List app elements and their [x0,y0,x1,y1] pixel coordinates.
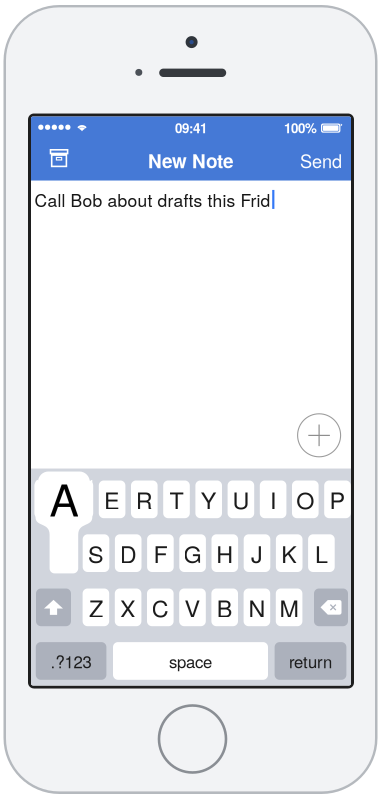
staticText: 100% [284,118,317,137]
button[interactable]: K [276,534,302,572]
staticText: A [49,466,78,529]
button[interactable]: G [179,534,206,572]
button[interactable]: E [99,480,125,518]
staticText: K [281,536,297,570]
button[interactable]: J [244,534,270,572]
button[interactable]: Compose [298,414,341,457]
button[interactable]: V [179,588,206,626]
button[interactable]: I [260,480,286,518]
button[interactable]: P [324,480,351,518]
staticText: U [232,483,249,516]
button[interactable]: F [147,534,174,572]
staticText: space [169,649,212,673]
staticText: F [153,536,167,570]
staticText: G [184,536,202,570]
button[interactable]: Y [195,480,222,518]
staticText: H [216,536,233,570]
staticText: I [270,483,276,516]
staticText: C [152,591,169,624]
button[interactable]: space [113,642,268,680]
button[interactable]: Q [34,480,61,518]
staticText: Send [300,147,342,173]
button[interactable]: Home [159,705,226,772]
staticText: S [88,536,104,570]
button[interactable]: S [83,534,109,572]
staticText: W [69,483,91,516]
button[interactable]: Send [295,142,347,178]
button[interactable]: return [275,642,346,680]
button[interactable]: U [228,480,254,518]
staticText: T [169,483,183,516]
staticText: V [184,591,200,624]
staticText: J [251,536,263,570]
staticText: L [315,536,328,570]
button[interactable]: R [131,480,158,518]
staticText: P [329,483,345,516]
button[interactable]: .?123 [36,642,106,680]
button[interactable]: C [147,588,174,626]
button[interactable]: L [308,534,335,572]
staticText: return [289,649,332,673]
button[interactable]: Archive [38,137,80,179]
button[interactable]: Z [83,588,109,626]
staticText: .?123 [51,649,92,673]
staticText: O [296,483,314,516]
staticText: Z [89,591,103,624]
staticText: Call Bob about drafts this Frid [35,187,271,212]
button[interactable]: D [115,534,141,572]
staticText: D [120,536,137,570]
button[interactable]: W [67,480,93,518]
button[interactable]: X [115,588,141,626]
staticText: E [104,483,120,516]
staticText: B [217,591,233,624]
button[interactable]: H [211,534,238,572]
button[interactable]: T [163,480,190,518]
staticText: R [136,483,153,516]
button[interactable]: M [276,588,302,626]
staticText: Y [201,483,217,516]
button[interactable]: Delete [314,588,348,626]
button[interactable]: B [211,588,238,626]
staticText: Q [39,483,57,516]
staticText: New Note [148,147,234,174]
staticText: X [120,591,136,624]
button[interactable]: Shift [36,588,71,626]
button[interactable]: O [292,480,319,518]
button[interactable]: N [244,588,270,626]
staticText: N [248,591,265,624]
staticText: M [280,591,299,624]
staticText: 09:41 [175,118,207,137]
